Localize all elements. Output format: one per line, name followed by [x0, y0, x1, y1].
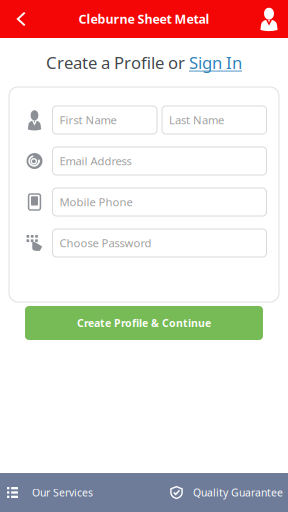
staticText: Quality Guarantee	[193, 485, 283, 500]
staticText: Choose Password	[59, 235, 151, 251]
staticText: Mobile Phone	[59, 194, 132, 210]
staticText: Sign In	[189, 51, 242, 74]
button[interactable]: Last Name	[162, 106, 266, 134]
button[interactable]: Quality Guarantee	[144, 473, 288, 512]
button[interactable]: Create Profile & Continue	[25, 306, 263, 340]
button[interactable]: Email Address	[52, 147, 266, 175]
button[interactable]: Choose Password	[52, 229, 266, 257]
staticText: Create a Profile or	[46, 51, 189, 74]
staticText: Cleburne Sheet Metal	[78, 11, 209, 27]
button[interactable]: Account	[256, 0, 288, 38]
button[interactable]: Back	[0, 0, 26, 38]
button[interactable]: Mobile Phone	[52, 188, 266, 216]
button[interactable]: First Name	[52, 106, 157, 134]
staticText: First Name	[59, 112, 116, 128]
staticText: Create Profile & Continue	[77, 316, 211, 330]
button[interactable]: Our Services	[0, 473, 144, 512]
staticText: Email Address	[59, 153, 131, 169]
button[interactable]: Sign In	[189, 51, 242, 74]
staticText: Our Services	[32, 485, 93, 500]
staticText: Last Name	[169, 112, 224, 128]
